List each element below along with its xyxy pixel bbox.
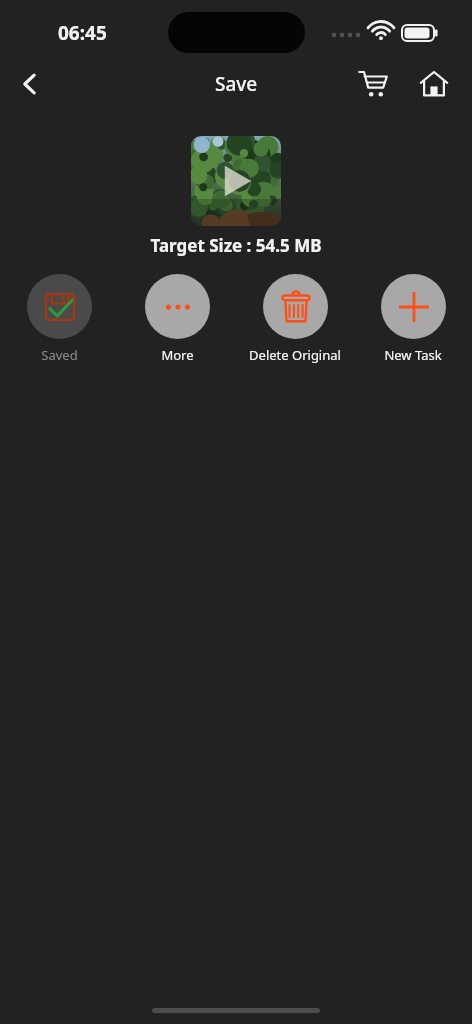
staticText: New Task xyxy=(384,346,442,364)
staticText: Saved xyxy=(41,346,78,364)
button[interactable]: Saved xyxy=(0,272,118,366)
staticText: Delete Original xyxy=(249,346,341,364)
staticText: More xyxy=(161,346,194,364)
staticText: Save xyxy=(215,71,258,97)
button[interactable]: Delete Original xyxy=(236,272,354,366)
button[interactable]: Back xyxy=(6,60,54,108)
button[interactable]: New Task xyxy=(354,272,472,366)
button[interactable]: Cart xyxy=(349,60,397,108)
button[interactable]: Home xyxy=(410,60,458,108)
button[interactable]: More xyxy=(118,272,236,366)
button[interactable]: Play preview xyxy=(191,136,281,226)
staticText: Target Size : 54.5 MB xyxy=(150,234,322,257)
staticText: 06:45 xyxy=(58,20,107,46)
